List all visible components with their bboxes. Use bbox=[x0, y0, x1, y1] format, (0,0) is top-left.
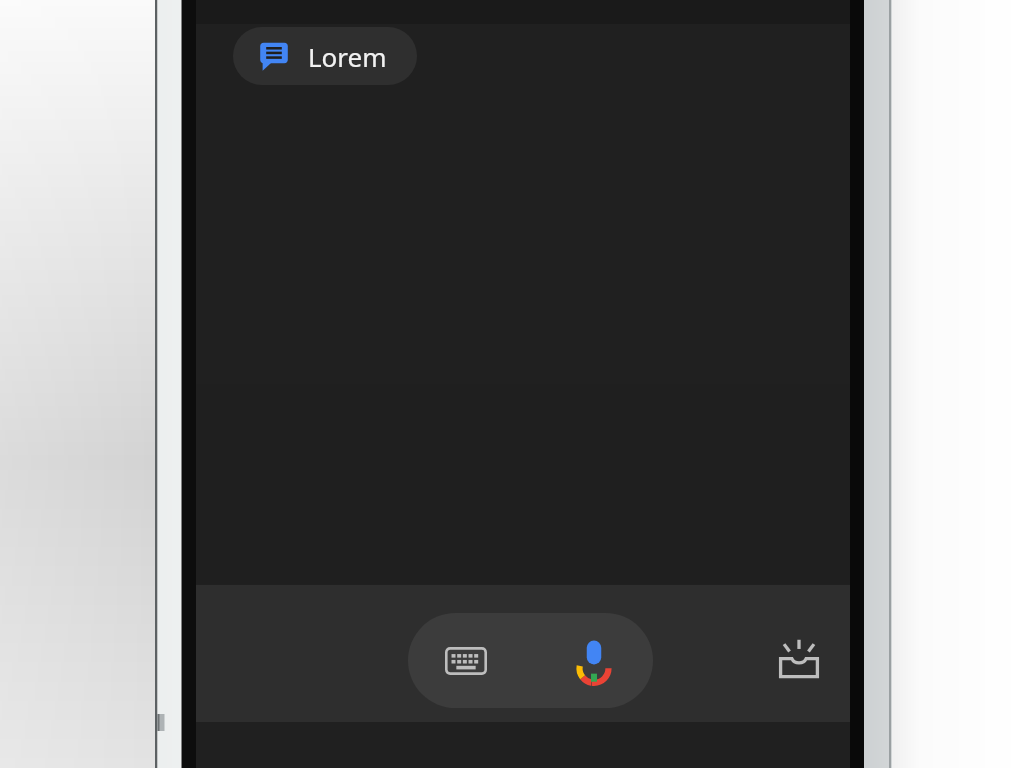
button[interactable]: Lorem bbox=[233, 27, 417, 85]
button[interactable]: Updates bbox=[762, 623, 836, 697]
button[interactable]: Voice search bbox=[565, 632, 623, 690]
staticText: Lorem bbox=[308, 39, 387, 74]
button[interactable]: Keyboard bbox=[440, 635, 492, 687]
